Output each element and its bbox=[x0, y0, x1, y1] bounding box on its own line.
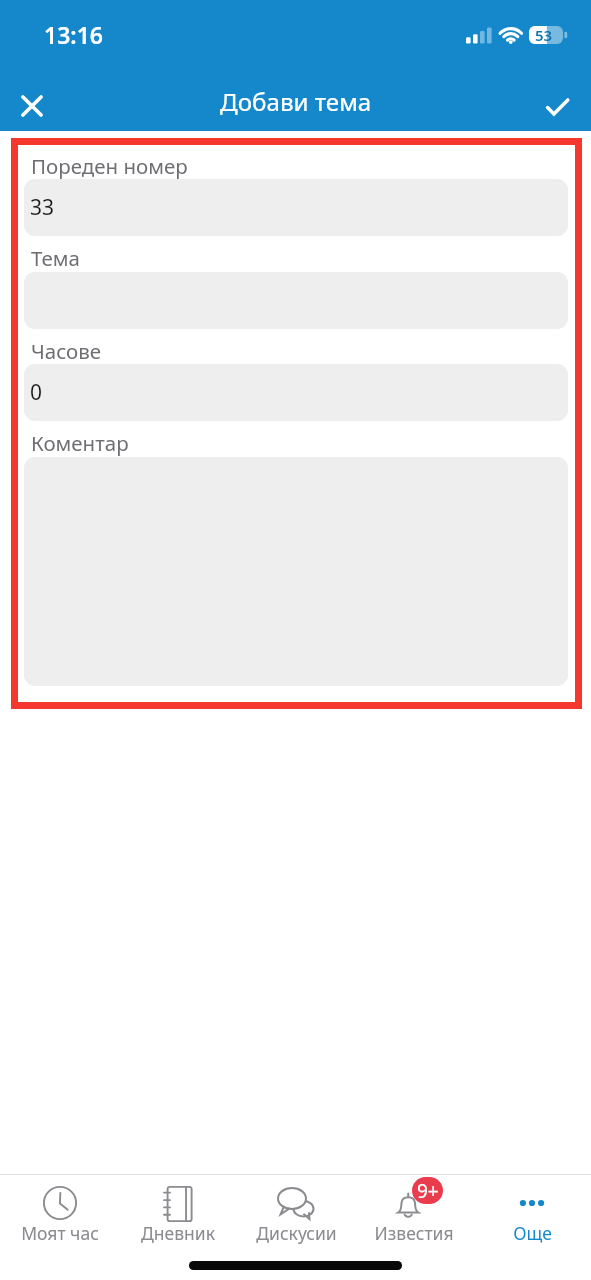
button[interactable]: Още bbox=[473, 1175, 591, 1254]
button[interactable]: 9+ bbox=[355, 1175, 473, 1254]
staticText: Известия bbox=[374, 1221, 454, 1245]
button[interactable]: Save bbox=[535, 84, 581, 130]
staticText: Часове bbox=[31, 337, 102, 365]
button[interactable]: 33 bbox=[24, 179, 568, 236]
staticText: 33 bbox=[30, 193, 55, 222]
button[interactable]: Моят час bbox=[0, 1175, 119, 1254]
button[interactable]: 0 bbox=[24, 364, 568, 421]
staticText: Още bbox=[513, 1221, 552, 1245]
button[interactable]: Close bbox=[9, 83, 55, 129]
staticText: 0 bbox=[30, 378, 43, 407]
staticText: Пореден номер bbox=[31, 152, 188, 180]
staticText: Моят час bbox=[21, 1221, 99, 1245]
staticText: 53 bbox=[535, 25, 553, 45]
staticText: 13:16 bbox=[44, 19, 103, 50]
button[interactable]: Дневник bbox=[119, 1175, 237, 1254]
staticText: Дискусии bbox=[256, 1221, 337, 1245]
staticText: Дневник bbox=[141, 1221, 215, 1245]
staticText: 9+ bbox=[417, 1178, 439, 1204]
staticText: Добави тема bbox=[220, 85, 372, 118]
staticText: Тема bbox=[31, 244, 81, 272]
staticText: Коментар bbox=[31, 429, 129, 457]
button[interactable]: Дискусии bbox=[237, 1175, 355, 1254]
